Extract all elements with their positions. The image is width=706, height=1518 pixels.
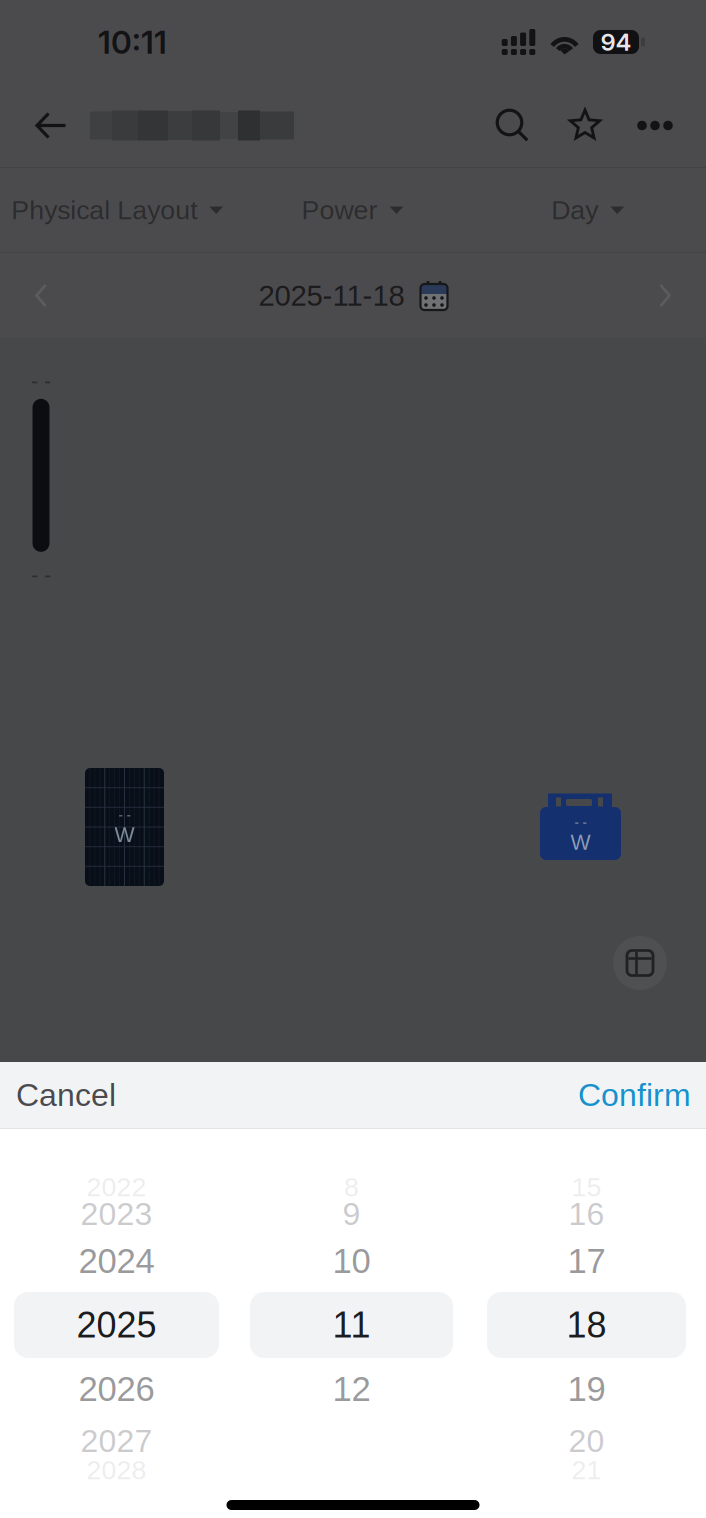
staticText: 18 <box>566 1305 606 1345</box>
staticText: 12 <box>332 1370 370 1408</box>
staticText: 2025-11-18 <box>258 279 404 312</box>
button[interactable]: Back <box>25 97 77 153</box>
button[interactable]: More options <box>627 97 683 153</box>
staticText: 2027 <box>80 1423 152 1459</box>
staticText: 16 <box>568 1196 604 1232</box>
staticText: 2026 <box>78 1370 154 1408</box>
staticText: Physical Layout <box>11 195 197 225</box>
staticText: 10 <box>332 1242 370 1280</box>
button[interactable]: 2025-11-18 <box>258 267 447 324</box>
staticText: 8 <box>344 1172 359 1202</box>
staticText: W <box>570 830 590 854</box>
button[interactable]: Cancel <box>0 1061 142 1129</box>
button[interactable]: Search <box>484 97 540 153</box>
staticText: 17 <box>567 1242 605 1280</box>
staticText: - - <box>31 563 51 587</box>
staticText: 19 <box>567 1370 605 1408</box>
staticText: Day <box>551 195 598 225</box>
staticText: 2024 <box>78 1242 154 1280</box>
button[interactable]: Physical Layout <box>0 168 235 252</box>
staticText: - - <box>31 369 51 393</box>
staticText: - - <box>574 814 586 829</box>
staticText: - - <box>118 807 130 822</box>
staticText: 2023 <box>80 1196 152 1232</box>
button[interactable]: Favourite <box>557 97 613 153</box>
staticText: 15 <box>571 1172 601 1202</box>
staticText: W <box>114 823 134 847</box>
staticText: 2022 <box>86 1172 146 1202</box>
staticText: 2025 <box>76 1305 156 1345</box>
staticText: 9 <box>342 1196 360 1232</box>
staticText: 21 <box>571 1455 601 1485</box>
button[interactable]: Table view <box>613 936 667 990</box>
staticText: Cancel <box>16 1077 116 1113</box>
staticText: Confirm <box>578 1077 691 1113</box>
staticText: 94 <box>600 27 631 56</box>
staticText: Power <box>301 195 377 225</box>
staticText: 11 <box>332 1305 370 1345</box>
staticText: 2028 <box>86 1455 146 1485</box>
button[interactable]: Day <box>471 168 706 252</box>
button[interactable]: Confirm <box>552 1061 706 1129</box>
button[interactable]: Power <box>235 168 471 252</box>
staticText: 10:11 <box>98 23 167 61</box>
staticText: 20 <box>568 1423 604 1459</box>
